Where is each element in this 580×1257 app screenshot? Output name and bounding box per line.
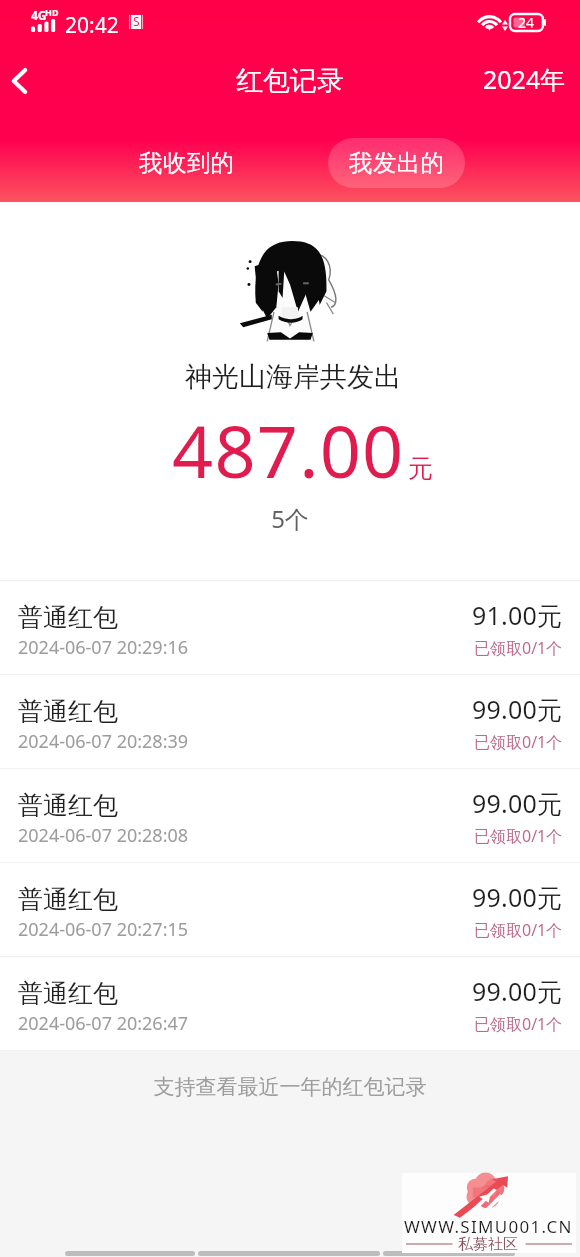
staticText: 支持查看最近一年的红包记录 bbox=[0, 1074, 580, 1100]
staticText: HD bbox=[45, 6, 59, 18]
staticText: 2024-06-07 20:28:08 bbox=[18, 823, 189, 848]
staticText: 4G bbox=[31, 7, 47, 23]
button[interactable]: 普通红包 bbox=[0, 769, 580, 862]
button[interactable]: Back bbox=[65, 1251, 195, 1256]
staticText: 已领取0/1个 bbox=[474, 825, 563, 847]
staticText: 普通红包 bbox=[18, 696, 118, 727]
staticText: 已领取0/1个 bbox=[474, 1013, 563, 1035]
staticText: 私募社区 bbox=[458, 1235, 518, 1254]
staticText: 普通红包 bbox=[18, 978, 118, 1009]
staticText: S bbox=[133, 13, 140, 29]
staticText: 91.00元 bbox=[472, 598, 563, 632]
button[interactable]: Home bbox=[198, 1251, 380, 1256]
staticText: 99.00元 bbox=[472, 786, 563, 820]
staticText: 99.00元 bbox=[472, 974, 563, 1008]
staticText: 普通红包 bbox=[18, 602, 118, 633]
staticText: 20:42 bbox=[65, 11, 119, 40]
staticText: 2024-06-07 20:27:15 bbox=[18, 917, 189, 942]
staticText: 99.00元 bbox=[472, 692, 563, 726]
staticText: WWW.SIMU001.CN bbox=[404, 1215, 578, 1238]
staticText: 普通红包 bbox=[18, 884, 118, 915]
button[interactable]: Back bbox=[0, 59, 42, 103]
staticText: 2024-06-07 20:29:16 bbox=[18, 635, 189, 660]
button[interactable]: Recent apps bbox=[383, 1251, 515, 1256]
staticText: 99.00元 bbox=[472, 880, 563, 914]
button[interactable]: 2024年 bbox=[483, 59, 580, 103]
staticText: 已领取0/1个 bbox=[474, 637, 563, 659]
button[interactable]: 普通红包 bbox=[0, 957, 580, 1050]
staticText: 2024-06-07 20:28:39 bbox=[18, 729, 189, 754]
staticText: 24 bbox=[518, 13, 535, 30]
staticText: 元 bbox=[408, 453, 433, 484]
staticText: 2024年 bbox=[483, 62, 566, 96]
staticText: 已领取0/1个 bbox=[474, 919, 563, 941]
staticText: 5个 bbox=[0, 502, 580, 535]
button[interactable]: 我收到的 bbox=[118, 138, 255, 188]
staticText: 487.00 bbox=[172, 401, 405, 499]
button[interactable]: 我发出的 bbox=[328, 138, 465, 188]
button[interactable]: 普通红包 bbox=[0, 863, 580, 956]
staticText: 2024-06-07 20:26:47 bbox=[18, 1011, 189, 1036]
staticText: 普通红包 bbox=[18, 790, 118, 821]
staticText: 我发出的 bbox=[349, 148, 445, 178]
staticText: 我收到的 bbox=[139, 148, 235, 178]
staticText: 神光山海岸共发出 bbox=[3, 360, 580, 394]
staticText: 红包记录 bbox=[236, 64, 344, 98]
button[interactable]: 普通红包 bbox=[0, 675, 580, 768]
button[interactable]: 普通红包 bbox=[0, 581, 580, 674]
staticText: 已领取0/1个 bbox=[474, 731, 563, 753]
